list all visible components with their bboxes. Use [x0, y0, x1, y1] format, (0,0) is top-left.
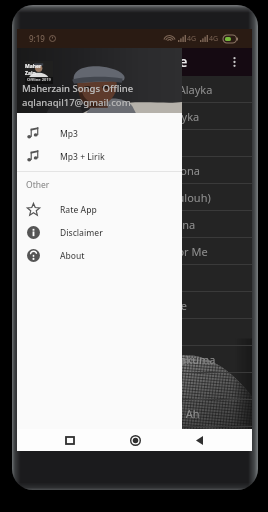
- staticText: Maher Zain Mp3 - Ya Nabi Alayka: [30, 109, 200, 124]
- button[interactable]: Maher Zain - Ya Nabi: [17, 427, 252, 451]
- button[interactable]: Maher Zain - Ramadan: [17, 265, 252, 291]
- button[interactable]: Maher Zain 2019 - Assalamu Alayka: [17, 76, 252, 102]
- staticText: Maher Zain Mp3 - Ya Nabi Ghona: [30, 163, 200, 178]
- staticText: Maher Zain Offline - Baraka Lakuma: [30, 352, 216, 367]
- button[interactable]: Rate App: [17, 198, 182, 221]
- staticText: Maher Zain Mp3 - Rest Of Life Ah: [30, 406, 200, 421]
- staticText: aqlanaqil17@gmail.com: [22, 96, 131, 109]
- button[interactable]: Maher Zain Mp3 - Ya Nabi Alayka: [17, 103, 252, 129]
- staticText: Maherzain Songs Offline: [29, 53, 188, 71]
- button[interactable]: Home: [124, 429, 146, 451]
- button[interactable]: Maher Zain - Thank You Allah: [17, 130, 252, 156]
- button[interactable]: Maher Zain Mp3 - Palestine Be: [17, 292, 252, 318]
- button[interactable]: Maher Zain Offline - Ya Maulana: [17, 211, 252, 237]
- button[interactable]: Maher Zain Mp3 - Rest Of Life Ah: [17, 400, 252, 426]
- staticText: Maher Zain 2019 - Number For Me: [30, 244, 208, 259]
- staticText: Mp3 + Lirik: [60, 151, 105, 163]
- staticText: Maher Zain Offline - Ya Maulana: [30, 217, 196, 232]
- staticText: Disclaimer: [60, 227, 103, 239]
- staticText: About: [60, 250, 85, 262]
- button[interactable]: Maher Zain - Radhitu Billahi: [17, 373, 252, 399]
- button[interactable]: Maher Zain Mp3 - Ya Nabi Ghona: [17, 157, 252, 183]
- staticText: Maher Zain Mp3 - Palestine Be: [30, 298, 187, 313]
- staticText: Maher Zain - Mawlaya (Rasululouh): [30, 190, 211, 205]
- button[interactable]: Mp3: [17, 122, 182, 145]
- button[interactable]: More options: [223, 51, 245, 73]
- staticText: Rate App: [60, 204, 97, 216]
- button[interactable]: Maher Zain - Insha Allah: [17, 319, 252, 345]
- staticText: 9:19: [29, 33, 45, 44]
- staticText: Maherzain Songs Offline: [22, 82, 134, 95]
- button[interactable]: About: [17, 244, 182, 267]
- staticText: Maher Zain 2019 - Assalamu Alayka: [30, 82, 213, 97]
- button[interactable]: Maher Zain - Mawlaya (Rasululouh): [17, 184, 252, 210]
- staticText: Maher Zain - Ya Nabi: [30, 432, 137, 447]
- button[interactable]: Recents: [59, 429, 81, 451]
- button[interactable]: Mp3 + Lirik: [17, 145, 182, 168]
- staticText: 4G: [209, 34, 219, 44]
- button[interactable]: Back: [188, 429, 210, 451]
- staticText: Offline 2019: [27, 77, 51, 82]
- button[interactable]: Maher Zain Offline - Baraka Lakuma: [17, 346, 252, 372]
- staticText: Mp3: [60, 128, 78, 140]
- button[interactable]: Disclaimer: [17, 221, 182, 244]
- staticText: Maher Zain - Thank You Allah: [30, 136, 181, 151]
- staticText: 4G: [187, 34, 197, 44]
- staticText: Other: [26, 179, 50, 191]
- staticText: Maher Zain: [25, 63, 53, 77]
- button[interactable]: Maher Zain 2019 - Number For Me: [17, 238, 252, 264]
